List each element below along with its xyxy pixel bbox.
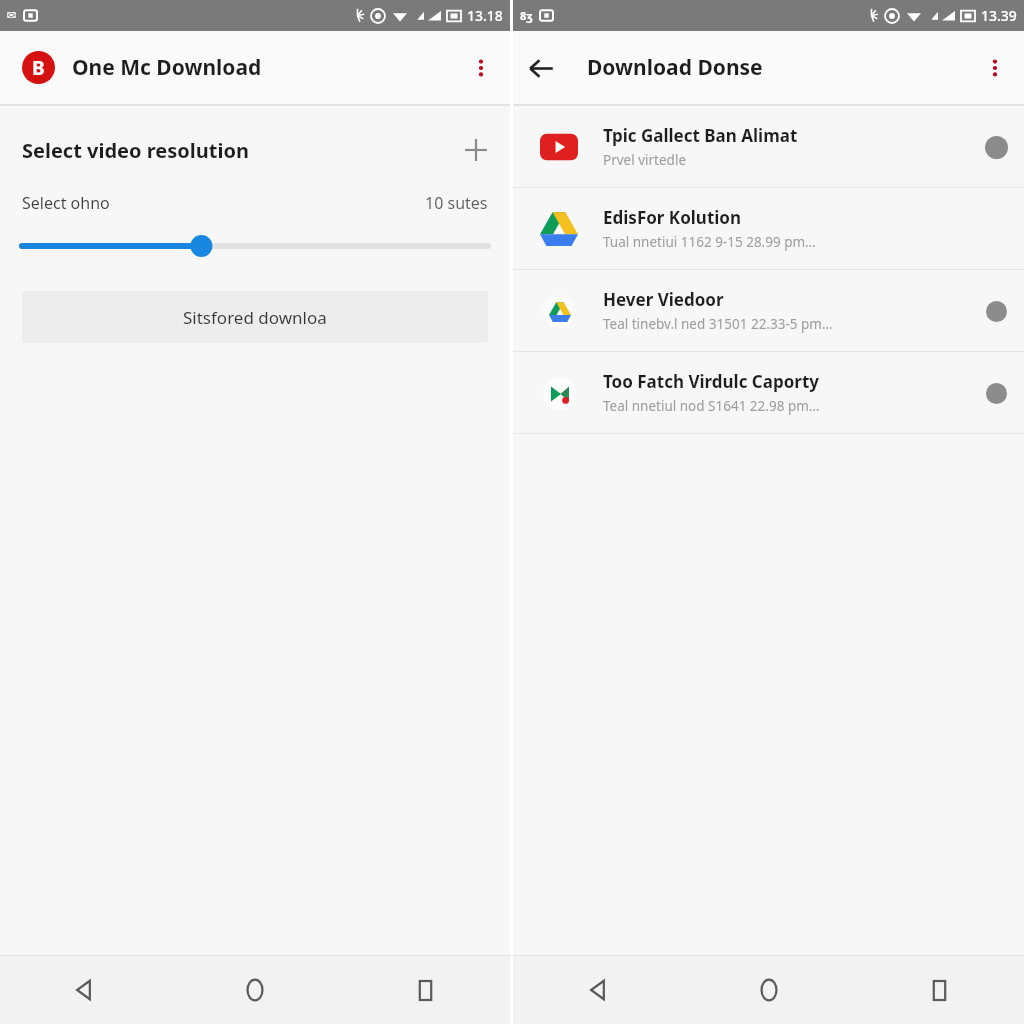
button[interactable]: Back xyxy=(513,956,684,1024)
staticText: Tpic Gallect Ban Alimat xyxy=(603,124,798,147)
staticText: One Mc Download xyxy=(72,53,262,82)
button[interactable]: More options xyxy=(971,44,1019,92)
staticText: Too Fatch Virdulc Caporty xyxy=(603,370,820,393)
staticText: Sitsfored downloa xyxy=(183,306,327,329)
button[interactable]: Hever Viedoor xyxy=(513,270,1024,351)
staticText: B xyxy=(32,55,45,81)
button[interactable]: EdisFor Kolution xyxy=(513,188,1024,269)
button[interactable]: Add xyxy=(454,128,498,172)
staticText: 13.18 xyxy=(467,6,503,25)
staticText: ✉ xyxy=(7,9,17,22)
button[interactable]: Recent apps xyxy=(854,956,1024,1024)
staticText: Select ohno xyxy=(22,192,110,214)
staticText: Select video resolution xyxy=(22,137,249,164)
button[interactable]: Tpic Gallect Ban Alimat xyxy=(513,106,1024,187)
button[interactable]: Home xyxy=(170,956,340,1024)
staticText: 10 sutes xyxy=(425,192,488,214)
button[interactable]: Home xyxy=(684,956,854,1024)
staticText: 13.39 xyxy=(981,6,1017,25)
button[interactable]: Resolution slider xyxy=(22,234,488,258)
staticText: EdisFor Kolution xyxy=(603,206,742,229)
button[interactable]: Too Fatch Virdulc Caporty xyxy=(513,352,1024,433)
staticText: Teal nnetiul nod S1641 22.98 pm… xyxy=(603,397,820,415)
button[interactable]: Back xyxy=(0,956,170,1024)
staticText: Hever Viedoor xyxy=(603,288,724,311)
staticText: Teal tinebv.l ned 31501 22.33-5 pm… xyxy=(603,315,833,333)
staticText: 8ʒ xyxy=(520,8,533,23)
staticText: Download Donse xyxy=(587,53,763,82)
button[interactable]: Sitsfored downloa xyxy=(22,291,488,343)
button[interactable]: Back xyxy=(513,40,569,96)
button[interactable]: Recent apps xyxy=(340,956,510,1024)
staticText: Prvel virtedle xyxy=(603,151,687,169)
button[interactable]: More options xyxy=(457,44,505,92)
staticText: Tual nnetiui 1162 9-15 28.99 pm… xyxy=(603,233,816,251)
